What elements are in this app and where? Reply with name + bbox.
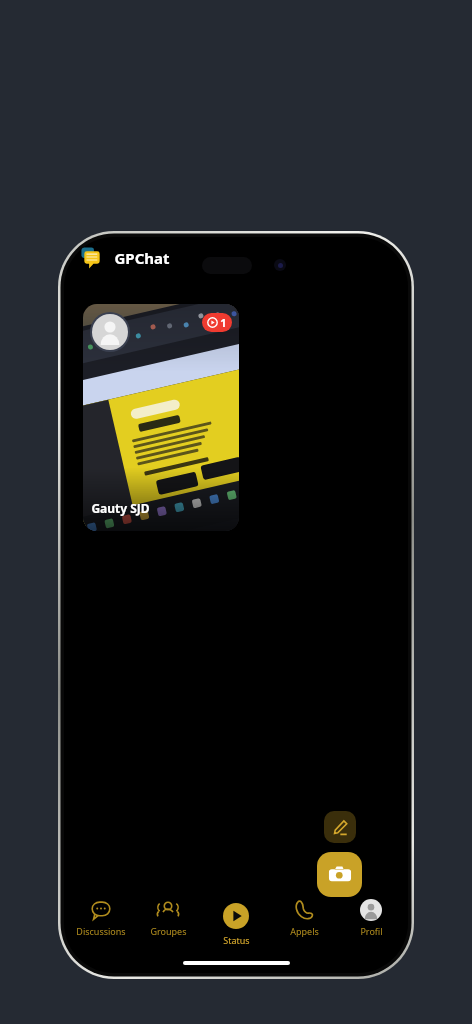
button[interactable]: Profil — [340, 895, 402, 937]
button[interactable]: Groupes — [137, 895, 199, 937]
button[interactable]: Appels — [273, 895, 335, 937]
staticText: GPChat — [114, 248, 170, 268]
button[interactable]: Discussions — [70, 895, 132, 937]
staticText: Groupes — [150, 925, 187, 937]
button[interactable]: Edit status — [324, 811, 356, 843]
staticText: 1 — [220, 315, 227, 330]
staticText: Status — [223, 934, 250, 946]
button[interactable]: Camera — [317, 852, 362, 897]
staticText: Gauty SJD — [91, 500, 150, 516]
button[interactable]: 1 — [83, 304, 239, 531]
button[interactable]: Status — [205, 895, 267, 946]
staticText: Profil — [360, 925, 383, 937]
staticText: Discussions — [76, 925, 126, 937]
staticText: Appels — [290, 925, 319, 937]
